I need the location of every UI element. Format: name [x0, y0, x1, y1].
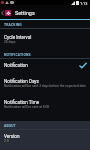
staticText: Version	[4, 134, 20, 139]
button[interactable]: Version	[0, 130, 90, 146]
button[interactable]: Notification Days	[0, 71, 90, 95]
staticText: Notification Days	[4, 79, 39, 84]
staticText: Notification will be sent at 8:00	[4, 105, 50, 109]
staticText: TRACKING	[4, 23, 22, 27]
staticText: 28 days	[4, 40, 16, 44]
staticText: Notification will be sent 3 days before …	[4, 84, 86, 88]
staticText: 1:13	[80, 1, 88, 5]
staticText: Cycle Interval	[4, 35, 32, 40]
staticText: ABOUT	[4, 124, 16, 128]
staticText: Notification	[4, 63, 28, 68]
staticText: 2.0	[4, 139, 9, 143]
staticText: Notification Time	[4, 100, 40, 105]
staticText: Settings	[15, 10, 35, 16]
button[interactable]: Navigate up	[0, 5, 11, 20]
button[interactable]: Cycle Interval	[0, 29, 90, 50]
button[interactable]: Notification	[0, 59, 90, 71]
staticText: NOTIFICATIONS	[4, 53, 31, 57]
button[interactable]: Notification Time	[0, 95, 90, 114]
